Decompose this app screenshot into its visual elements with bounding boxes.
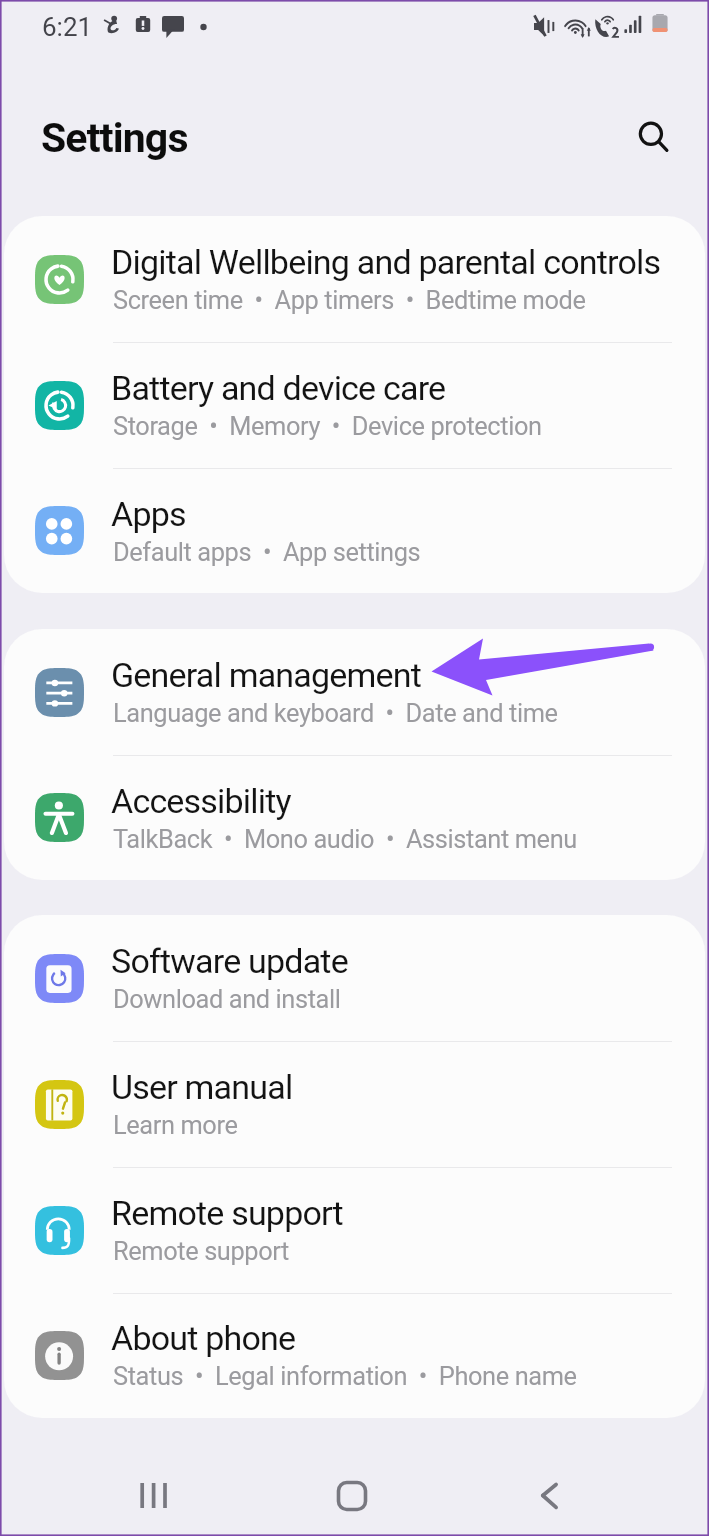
staticText: 6:21: [42, 12, 93, 42]
staticText: About phone: [111, 1318, 296, 1358]
staticText: Language and keyboard • Date and time: [113, 698, 558, 728]
button[interactable]: Recent apps: [120, 1461, 186, 1527]
staticText: TalkBack • Mono audio • Assistant menu: [113, 824, 577, 854]
staticText: Software update: [111, 941, 348, 981]
button[interactable]: Search: [620, 104, 680, 164]
staticText: General management: [111, 655, 422, 695]
staticText: Battery and device care: [111, 368, 446, 408]
staticText: Remote support: [113, 1236, 289, 1266]
button[interactable]: Digital Wellbeing and parental controls: [4, 216, 705, 342]
button[interactable]: About phone: [4, 1293, 705, 1417]
staticText: Apps: [111, 494, 186, 534]
staticText: Remote support: [111, 1193, 343, 1233]
staticText: Learn more: [113, 1110, 238, 1140]
button[interactable]: General management: [4, 629, 705, 755]
staticText: Screen time • App timers • Bedtime mode: [113, 285, 586, 315]
button[interactable]: Apps: [4, 468, 705, 593]
staticText: Download and install: [113, 984, 341, 1014]
button[interactable]: Remote support: [4, 1167, 705, 1293]
staticText: Status • Legal information • Phone name: [113, 1361, 577, 1391]
staticText: User manual: [111, 1067, 293, 1107]
staticText: Default apps • App settings: [113, 537, 421, 567]
staticText: Storage • Memory • Device protection: [113, 411, 542, 441]
button[interactable]: Software update: [4, 915, 705, 1041]
button[interactable]: Accessibility: [4, 755, 705, 880]
button[interactable]: Home: [320, 1461, 386, 1527]
staticText: Settings: [41, 114, 188, 162]
button[interactable]: User manual: [4, 1041, 705, 1167]
staticText: Digital Wellbeing and parental controls: [111, 242, 661, 282]
button[interactable]: Back: [520, 1461, 586, 1527]
staticText: Accessibility: [111, 781, 291, 821]
button[interactable]: Battery and device care: [4, 342, 705, 468]
